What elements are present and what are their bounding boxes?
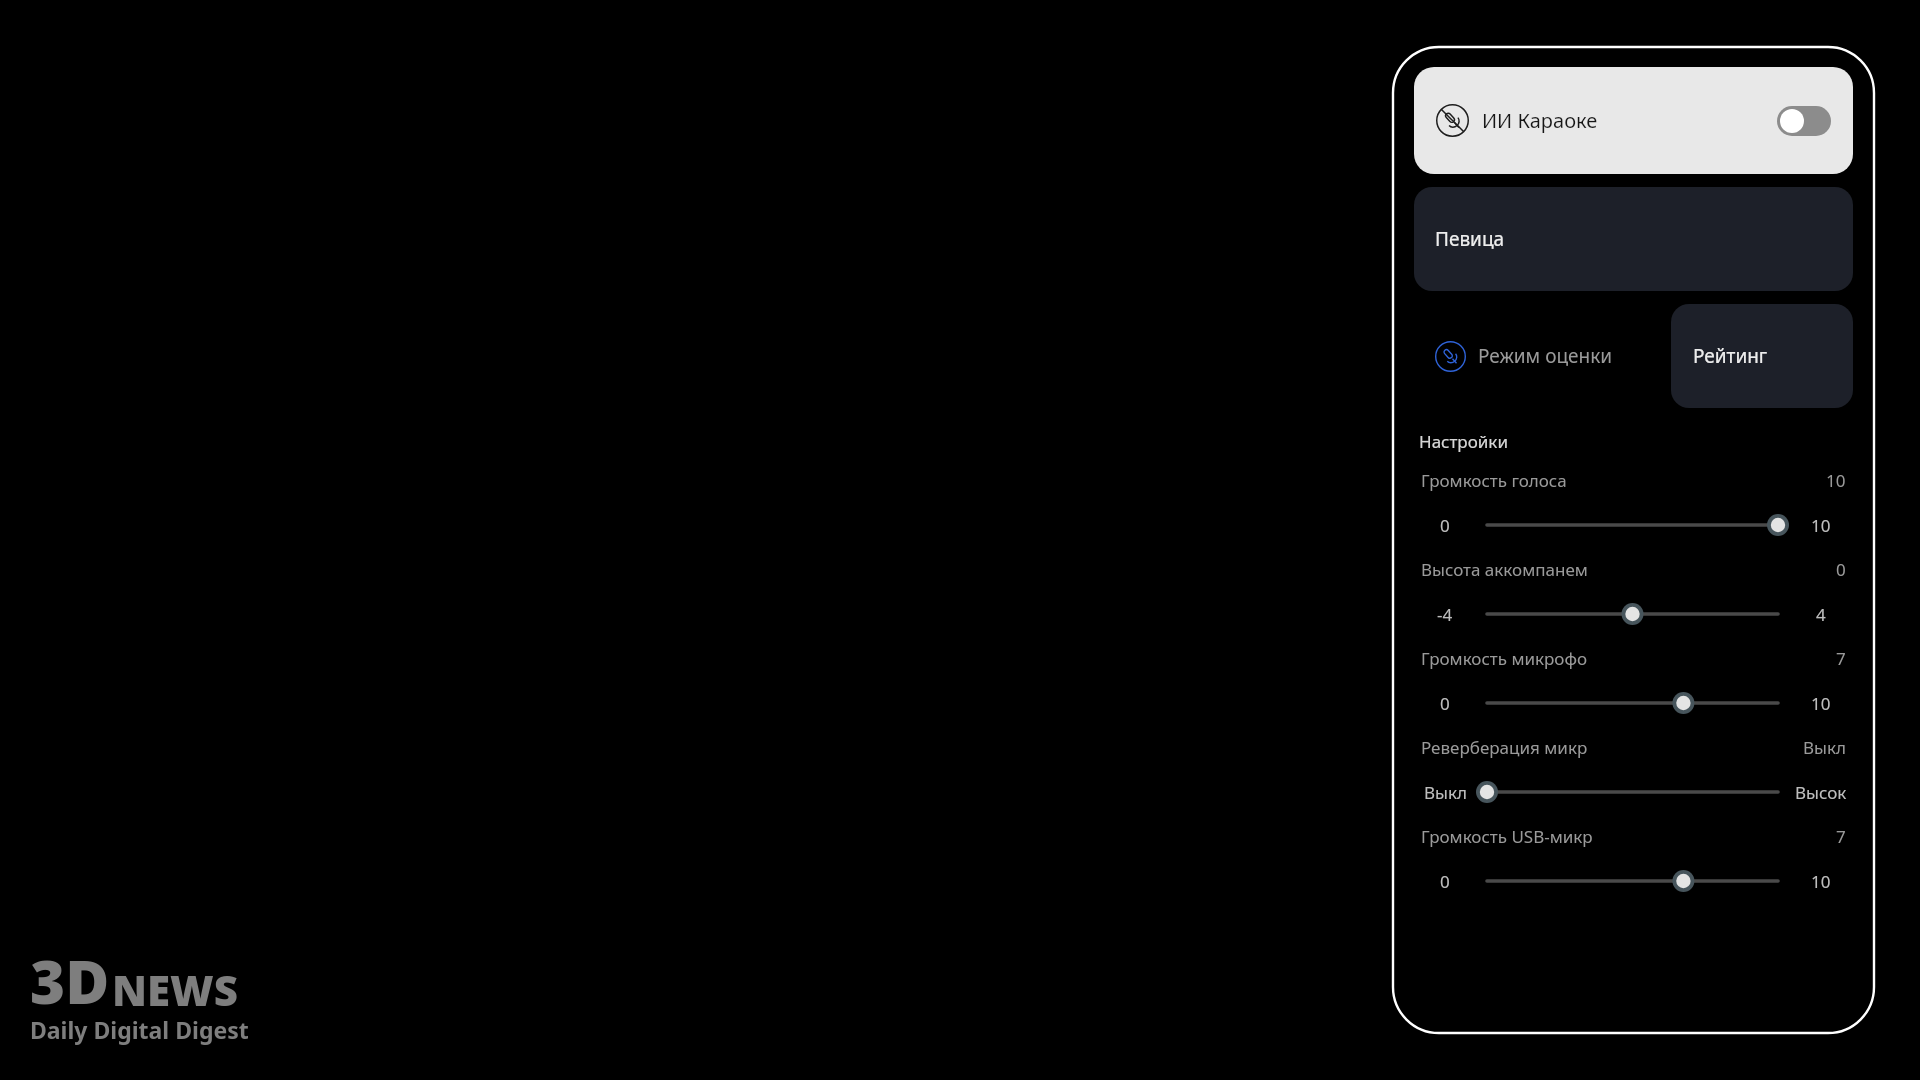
staticText: -4	[1437, 603, 1453, 626]
button[interactable]: Громкость голоса	[1414, 469, 1853, 558]
staticText: Громкость голоса	[1421, 469, 1567, 492]
staticText: 10	[1811, 692, 1831, 715]
staticText: 10	[1811, 514, 1831, 537]
button[interactable]: Певица	[1414, 187, 1853, 291]
staticText: 0	[1440, 514, 1450, 537]
button[interactable]: Громкость USB-микр	[1414, 825, 1853, 914]
staticText: Громкость USB-микр	[1421, 825, 1593, 848]
button[interactable]: Громкость микрофо	[1414, 647, 1853, 736]
staticText: 3D	[30, 940, 110, 1022]
staticText: 10	[1826, 469, 1846, 492]
staticText: Высота аккомпанем	[1421, 558, 1588, 581]
staticText: ИИ Караоке	[1482, 107, 1598, 134]
staticText: NEWS	[112, 961, 238, 1018]
button[interactable]: Реверберация микр	[1414, 736, 1853, 825]
button[interactable]: Режим оценки	[1414, 304, 1671, 408]
staticText: Выкл	[1424, 781, 1467, 804]
staticText: Рейтинг	[1693, 343, 1768, 369]
button[interactable]: ИИ Караоке	[1414, 67, 1853, 174]
staticText: 10	[1811, 870, 1831, 893]
button[interactable]: Высота аккомпанем	[1414, 558, 1853, 647]
button[interactable]: Toggle AI Karaoke	[1777, 106, 1831, 136]
staticText: Настройки	[1419, 430, 1508, 453]
staticText: Громкость микрофо	[1421, 647, 1588, 670]
staticText: 0	[1440, 692, 1450, 715]
staticText: Режим оценки	[1478, 343, 1613, 369]
staticText: 4	[1816, 603, 1826, 626]
staticText: Выкл	[1803, 736, 1846, 759]
staticText: Реверберация микр	[1421, 736, 1588, 759]
button[interactable]: Рейтинг	[1671, 304, 1853, 408]
staticText: 0	[1440, 870, 1450, 893]
staticText: Певица	[1435, 226, 1505, 252]
staticText: Daily Digital Digest	[30, 1014, 249, 1045]
staticText: Высок	[1795, 781, 1847, 804]
staticText: 0	[1836, 558, 1846, 581]
staticText: 7	[1836, 825, 1846, 848]
staticText: 7	[1836, 647, 1846, 670]
